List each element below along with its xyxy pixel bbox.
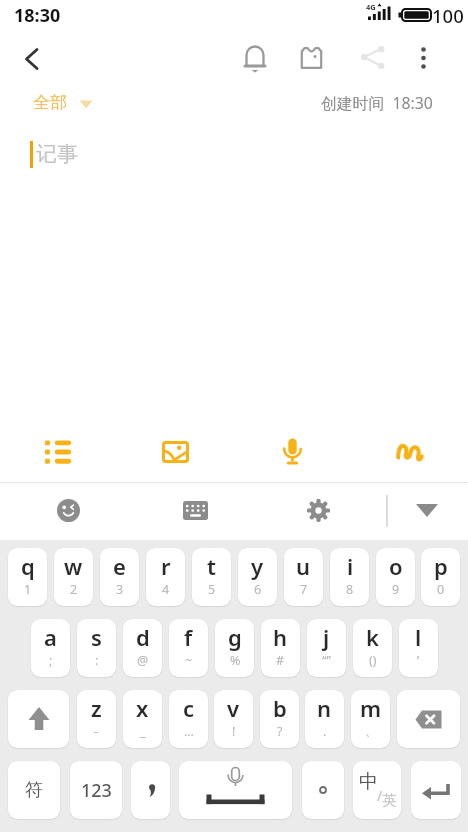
button[interactable]: o bbox=[376, 548, 415, 606]
button[interactable] bbox=[131, 761, 170, 819]
button[interactable] bbox=[397, 690, 460, 748]
staticText: 记事 bbox=[36, 141, 78, 167]
staticText: m bbox=[360, 693, 382, 723]
button[interactable]: y bbox=[238, 548, 277, 606]
button[interactable] bbox=[358, 43, 388, 73]
staticText: @ bbox=[137, 652, 149, 669]
button[interactable]: e bbox=[100, 548, 139, 606]
staticText: k bbox=[366, 622, 379, 652]
button[interactable]: w bbox=[54, 548, 93, 606]
staticText: ’ bbox=[417, 652, 420, 669]
button[interactable]: z bbox=[77, 690, 116, 748]
button[interactable] bbox=[240, 41, 270, 75]
staticText: 2 bbox=[70, 581, 78, 598]
staticText: 7 bbox=[300, 581, 308, 598]
button[interactable] bbox=[409, 41, 439, 75]
staticText: j bbox=[323, 622, 330, 652]
button[interactable]: p bbox=[421, 548, 460, 606]
button[interactable]: r bbox=[146, 548, 185, 606]
staticText: s bbox=[91, 622, 102, 652]
staticText: y bbox=[251, 551, 264, 581]
button[interactable]: d bbox=[123, 619, 162, 677]
button[interactable]: 全部 bbox=[28, 90, 98, 116]
button[interactable]: b bbox=[260, 690, 299, 748]
staticText: v bbox=[227, 693, 240, 723]
staticText: 5 bbox=[208, 581, 216, 598]
staticText: 、 bbox=[365, 723, 378, 739]
button[interactable]: j bbox=[307, 619, 346, 677]
staticText: f bbox=[184, 622, 193, 652]
button[interactable]: 中 bbox=[353, 761, 401, 819]
button[interactable] bbox=[8, 690, 69, 748]
staticText: 英 bbox=[382, 791, 397, 809]
staticText: # bbox=[276, 652, 285, 669]
staticText: d bbox=[136, 622, 150, 652]
staticText: b bbox=[273, 693, 287, 723]
button[interactable]: f bbox=[169, 619, 208, 677]
button[interactable]: k bbox=[353, 619, 392, 677]
button[interactable]: h bbox=[261, 619, 300, 677]
button[interactable] bbox=[302, 761, 344, 819]
staticText: / bbox=[377, 786, 383, 805]
staticText: i bbox=[347, 551, 354, 581]
staticText: () bbox=[369, 652, 377, 669]
staticText: 符 bbox=[25, 779, 43, 802]
button[interactable]: m bbox=[351, 690, 390, 748]
staticText: 3 bbox=[116, 581, 124, 598]
staticText: 8 bbox=[346, 581, 354, 598]
staticText: - bbox=[94, 723, 99, 740]
button[interactable]: v bbox=[214, 690, 253, 748]
staticText: % bbox=[230, 652, 241, 669]
staticText: r bbox=[161, 551, 171, 581]
staticText: 100 bbox=[432, 3, 464, 28]
staticText: 9 bbox=[392, 581, 400, 598]
button[interactable] bbox=[411, 761, 461, 819]
button[interactable] bbox=[263, 422, 322, 481]
staticText: n bbox=[317, 693, 332, 723]
staticText: c bbox=[183, 693, 195, 723]
button[interactable] bbox=[179, 761, 292, 819]
button[interactable] bbox=[46, 488, 91, 533]
staticText: 6 bbox=[254, 581, 262, 598]
button[interactable]: s bbox=[77, 619, 116, 677]
button[interactable]: 123 bbox=[70, 761, 122, 819]
button[interactable]: a bbox=[31, 619, 70, 677]
button[interactable]: q bbox=[8, 548, 47, 606]
button[interactable] bbox=[405, 490, 449, 532]
staticText: ; bbox=[49, 652, 53, 669]
staticText: ! bbox=[232, 723, 236, 740]
staticText: … bbox=[184, 723, 194, 740]
button[interactable] bbox=[296, 488, 341, 533]
staticText: a bbox=[44, 622, 57, 652]
staticText: 4G bbox=[366, 2, 376, 12]
staticText: ~ bbox=[185, 652, 193, 669]
button[interactable]: u bbox=[284, 548, 323, 606]
staticText: 123 bbox=[81, 778, 112, 803]
staticText: . bbox=[323, 723, 327, 740]
button[interactable] bbox=[173, 488, 218, 533]
staticText: x bbox=[136, 693, 149, 723]
staticText: 全部 bbox=[33, 92, 67, 113]
staticText: ? bbox=[277, 723, 283, 740]
button[interactable]: t bbox=[192, 548, 231, 606]
button[interactable]: c bbox=[169, 690, 208, 748]
button[interactable]: x bbox=[123, 690, 162, 748]
staticText: g bbox=[228, 622, 242, 652]
staticText: w bbox=[64, 551, 83, 581]
button[interactable]: l bbox=[399, 619, 438, 677]
button[interactable] bbox=[380, 422, 439, 481]
staticText: t bbox=[207, 551, 216, 581]
button[interactable]: 符 bbox=[8, 761, 60, 819]
staticText: q bbox=[21, 551, 35, 581]
button[interactable] bbox=[146, 422, 205, 481]
staticText: 中 bbox=[359, 770, 378, 794]
staticText: 1 bbox=[24, 581, 32, 598]
button[interactable] bbox=[297, 41, 327, 75]
button[interactable] bbox=[14, 42, 52, 76]
button[interactable]: g bbox=[215, 619, 254, 677]
button[interactable]: n bbox=[305, 690, 344, 748]
staticText: h bbox=[273, 622, 288, 652]
button[interactable] bbox=[29, 422, 88, 481]
button[interactable]: i bbox=[330, 548, 369, 606]
staticText: l bbox=[415, 622, 422, 652]
